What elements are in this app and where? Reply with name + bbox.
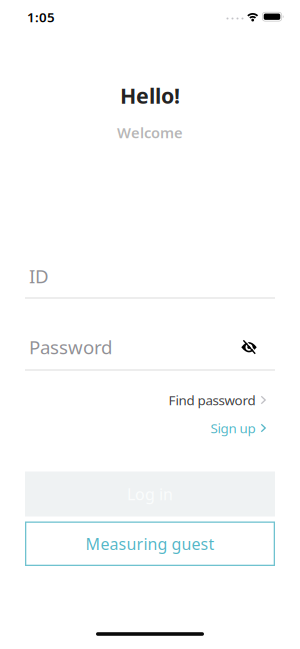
button[interactable]: Show password (240, 339, 257, 355)
staticText: Find password (168, 391, 255, 409)
button[interactable]: Find password (34, 391, 266, 409)
staticText: Sign up (210, 419, 255, 437)
staticText: ID (29, 264, 49, 288)
staticText: 1:05 (27, 8, 55, 26)
button[interactable]: Sign up (34, 419, 266, 437)
staticText: Welcome (117, 123, 183, 142)
staticText: Measuring guest (85, 533, 214, 554)
button[interactable]: Measuring guest (25, 521, 275, 566)
staticText: Log in (127, 483, 173, 505)
staticText: Password (29, 335, 112, 359)
staticText: Hello! (120, 81, 180, 110)
